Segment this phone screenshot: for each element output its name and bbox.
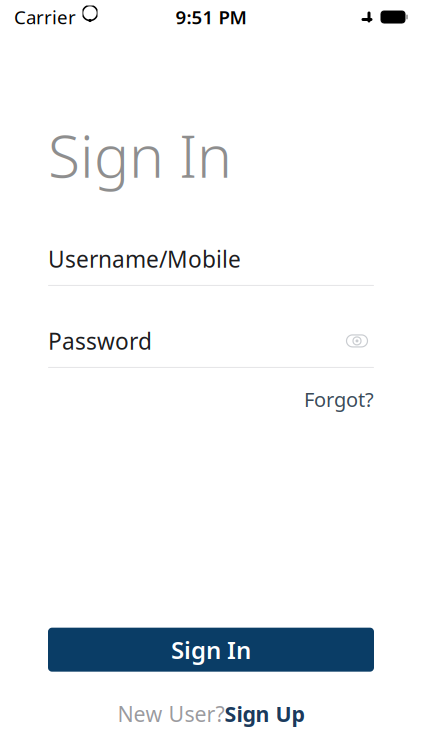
staticText: New User? (117, 700, 224, 728)
staticText: Forgot? (304, 386, 374, 412)
button[interactable]: Forgot? (294, 380, 374, 418)
staticText: Sign Up (224, 700, 304, 728)
staticText: Sign In (48, 116, 232, 194)
staticText: 9:51 PM (175, 5, 246, 29)
staticText: Sign In (171, 634, 251, 666)
staticText: Carrier (14, 5, 76, 29)
button[interactable]: New User? (105, 692, 316, 736)
staticText: Password (48, 326, 152, 356)
button[interactable]: Sign In (48, 628, 374, 672)
staticText: Username/Mobile (48, 244, 241, 274)
button[interactable]: Show password (340, 328, 374, 354)
